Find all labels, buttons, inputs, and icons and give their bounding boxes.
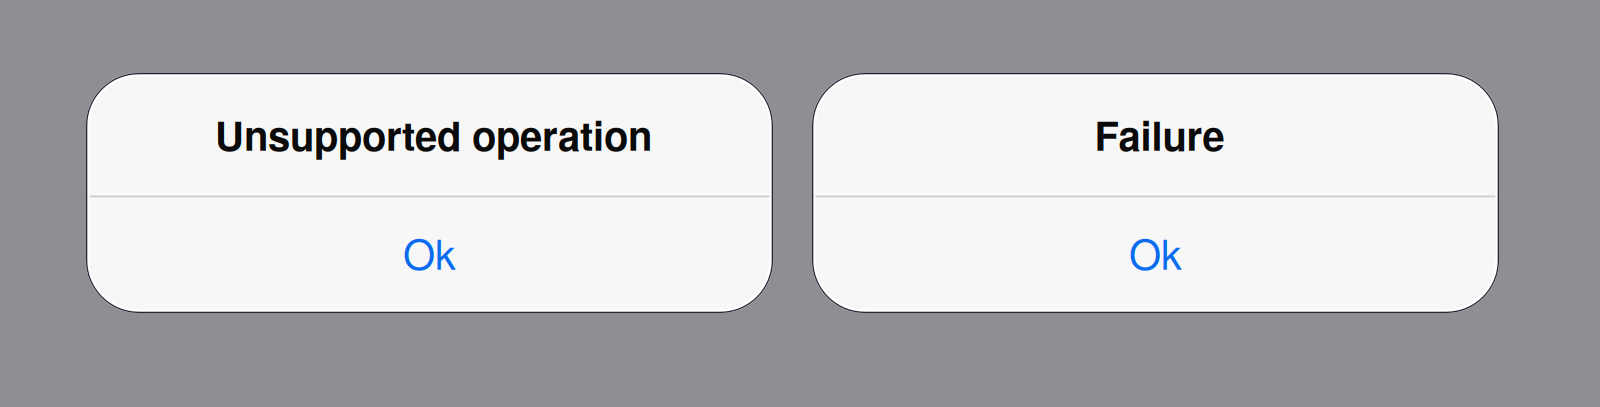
button[interactable]: Ok — [812, 198, 1499, 313]
staticText: Failure — [1094, 106, 1224, 163]
staticText: Ok — [403, 222, 456, 282]
button[interactable]: Ok — [86, 198, 773, 313]
staticText: Ok — [1129, 222, 1182, 282]
staticText: Unsupported operation — [215, 106, 652, 163]
